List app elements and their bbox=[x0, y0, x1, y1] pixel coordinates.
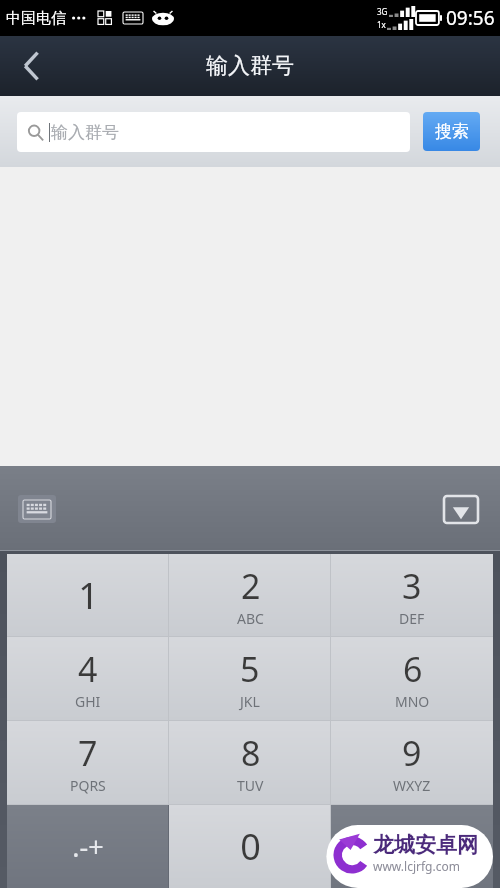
staticText: 3G bbox=[377, 6, 388, 17]
staticText: 5 bbox=[240, 646, 260, 692]
staticText: 4 bbox=[78, 646, 98, 692]
staticText: www.lcjrfg.com bbox=[373, 858, 460, 874]
staticText: 8 bbox=[241, 730, 261, 776]
staticText: 1 bbox=[78, 571, 99, 620]
staticText: 2 bbox=[241, 563, 261, 609]
staticText: DEF bbox=[399, 609, 425, 628]
staticText: .-+ bbox=[72, 828, 104, 865]
button[interactable]: 6 bbox=[331, 637, 493, 720]
button[interactable]: Back bbox=[0, 36, 64, 96]
staticText: TUV bbox=[237, 776, 264, 795]
button[interactable]: 8 bbox=[169, 721, 331, 804]
staticText: 7 bbox=[78, 730, 98, 776]
staticText: 中国电信 bbox=[6, 9, 66, 28]
button[interactable]: 输入群号 bbox=[17, 112, 410, 152]
button[interactable]: .-+ bbox=[7, 805, 169, 888]
button[interactable]: 2 bbox=[169, 554, 331, 636]
staticText: 输入群号 bbox=[51, 122, 119, 143]
staticText: WXYZ bbox=[393, 776, 431, 795]
staticText: 3 bbox=[402, 563, 422, 609]
other: Delete bbox=[389, 832, 435, 862]
staticText: ABC bbox=[237, 609, 264, 628]
button[interactable]: 7 bbox=[7, 721, 169, 804]
staticText: 9 bbox=[402, 730, 422, 776]
staticText: PQRS bbox=[70, 776, 106, 795]
staticText: 09:56 bbox=[446, 5, 495, 31]
button[interactable]: 0 bbox=[169, 805, 331, 888]
button[interactable]: Hide keyboard bbox=[434, 484, 488, 534]
button[interactable]: 5 bbox=[169, 637, 331, 720]
staticText: 输入群号 bbox=[206, 52, 294, 80]
button[interactable]: 9 bbox=[331, 721, 493, 804]
staticText: 龙城安卓网 bbox=[373, 832, 478, 858]
button[interactable]: 3 bbox=[331, 554, 493, 636]
staticText: JKL bbox=[240, 692, 260, 711]
staticText: 搜索 bbox=[435, 121, 469, 142]
button[interactable]: 1 bbox=[7, 554, 169, 636]
button[interactable]: 搜索 bbox=[423, 112, 480, 151]
button[interactable]: Switch keyboard bbox=[10, 484, 64, 534]
staticText: GHI bbox=[75, 692, 101, 711]
button[interactable]: Delete bbox=[331, 805, 493, 888]
staticText: 1x bbox=[377, 19, 386, 30]
staticText: MNO bbox=[395, 692, 430, 711]
staticText: 6 bbox=[403, 646, 423, 692]
button[interactable]: 4 bbox=[7, 637, 169, 720]
staticText: 0 bbox=[240, 822, 261, 871]
